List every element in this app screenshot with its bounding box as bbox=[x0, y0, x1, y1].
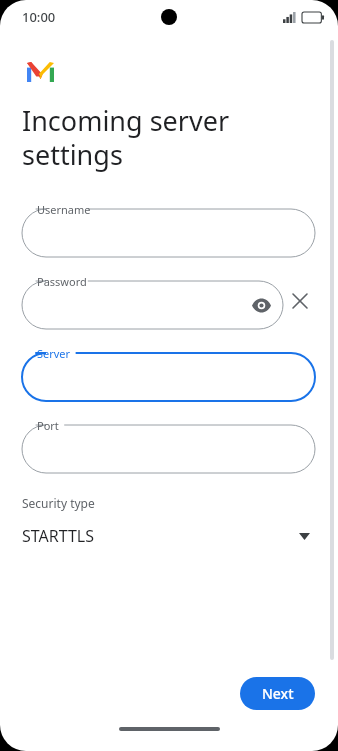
staticText: Next bbox=[262, 684, 294, 703]
staticText: Port bbox=[37, 418, 59, 433]
staticText: Password bbox=[37, 274, 87, 289]
staticText: Server bbox=[37, 346, 71, 361]
button[interactable]: Username bbox=[22, 201, 315, 257]
button[interactable]: Password bbox=[22, 273, 283, 329]
staticText: Username bbox=[37, 202, 91, 217]
staticText: Security type bbox=[22, 495, 95, 511]
button[interactable]: Clear password bbox=[283, 284, 317, 318]
button[interactable]: STARTTLS bbox=[0, 521, 338, 551]
button[interactable]: Port bbox=[22, 417, 315, 473]
staticText: 10:00 bbox=[22, 8, 56, 26]
button[interactable]: Next bbox=[240, 677, 315, 710]
staticText: STARTTLS bbox=[22, 525, 299, 547]
button[interactable]: Show password bbox=[249, 293, 273, 317]
button[interactable]: Server bbox=[22, 345, 315, 401]
staticText: Incoming server settings bbox=[22, 102, 298, 173]
